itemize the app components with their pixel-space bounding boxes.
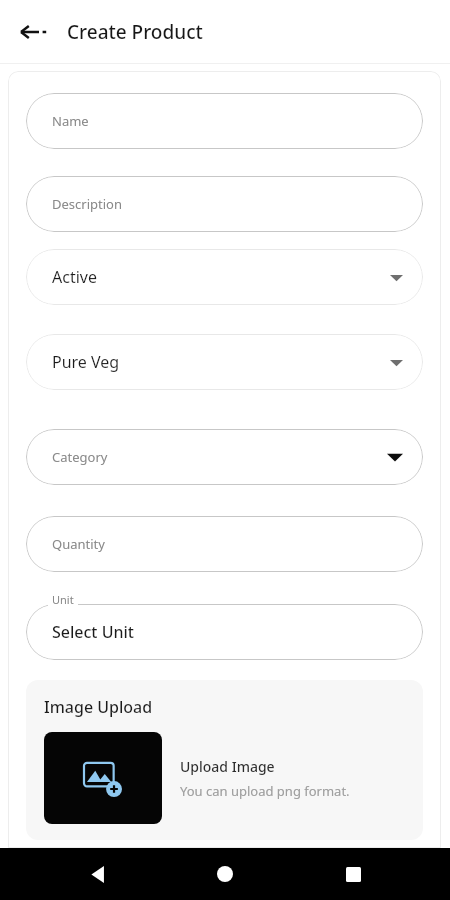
staticText: Quantity [52, 535, 105, 553]
staticText: Upload Image [180, 757, 275, 776]
staticText: You can upload png format. [180, 782, 350, 800]
staticText: Description [52, 195, 122, 213]
button[interactable]: Back [68, 848, 128, 900]
staticText: Pure Veg [52, 351, 120, 373]
button[interactable]: Recent apps [323, 848, 383, 900]
button[interactable]: Active [26, 249, 423, 305]
button[interactable]: Upload image [44, 732, 350, 824]
staticText: Image Upload [44, 696, 153, 718]
button[interactable]: Description [26, 176, 423, 232]
staticText: Name [52, 112, 89, 130]
button[interactable]: Pure Veg [26, 334, 423, 390]
button[interactable]: Back [12, 11, 54, 53]
staticText: Create Product [67, 19, 203, 45]
button[interactable]: Select Unit [26, 604, 423, 660]
button[interactable]: Category [26, 429, 423, 485]
staticText: Unit [52, 592, 74, 607]
button[interactable]: Quantity [26, 516, 423, 572]
staticText: Category [52, 448, 108, 466]
staticText: Active [52, 266, 97, 288]
button[interactable]: Name [26, 93, 423, 149]
staticText: Select Unit [52, 621, 134, 643]
button[interactable]: Home [195, 848, 255, 900]
other: Upload image [44, 732, 162, 824]
